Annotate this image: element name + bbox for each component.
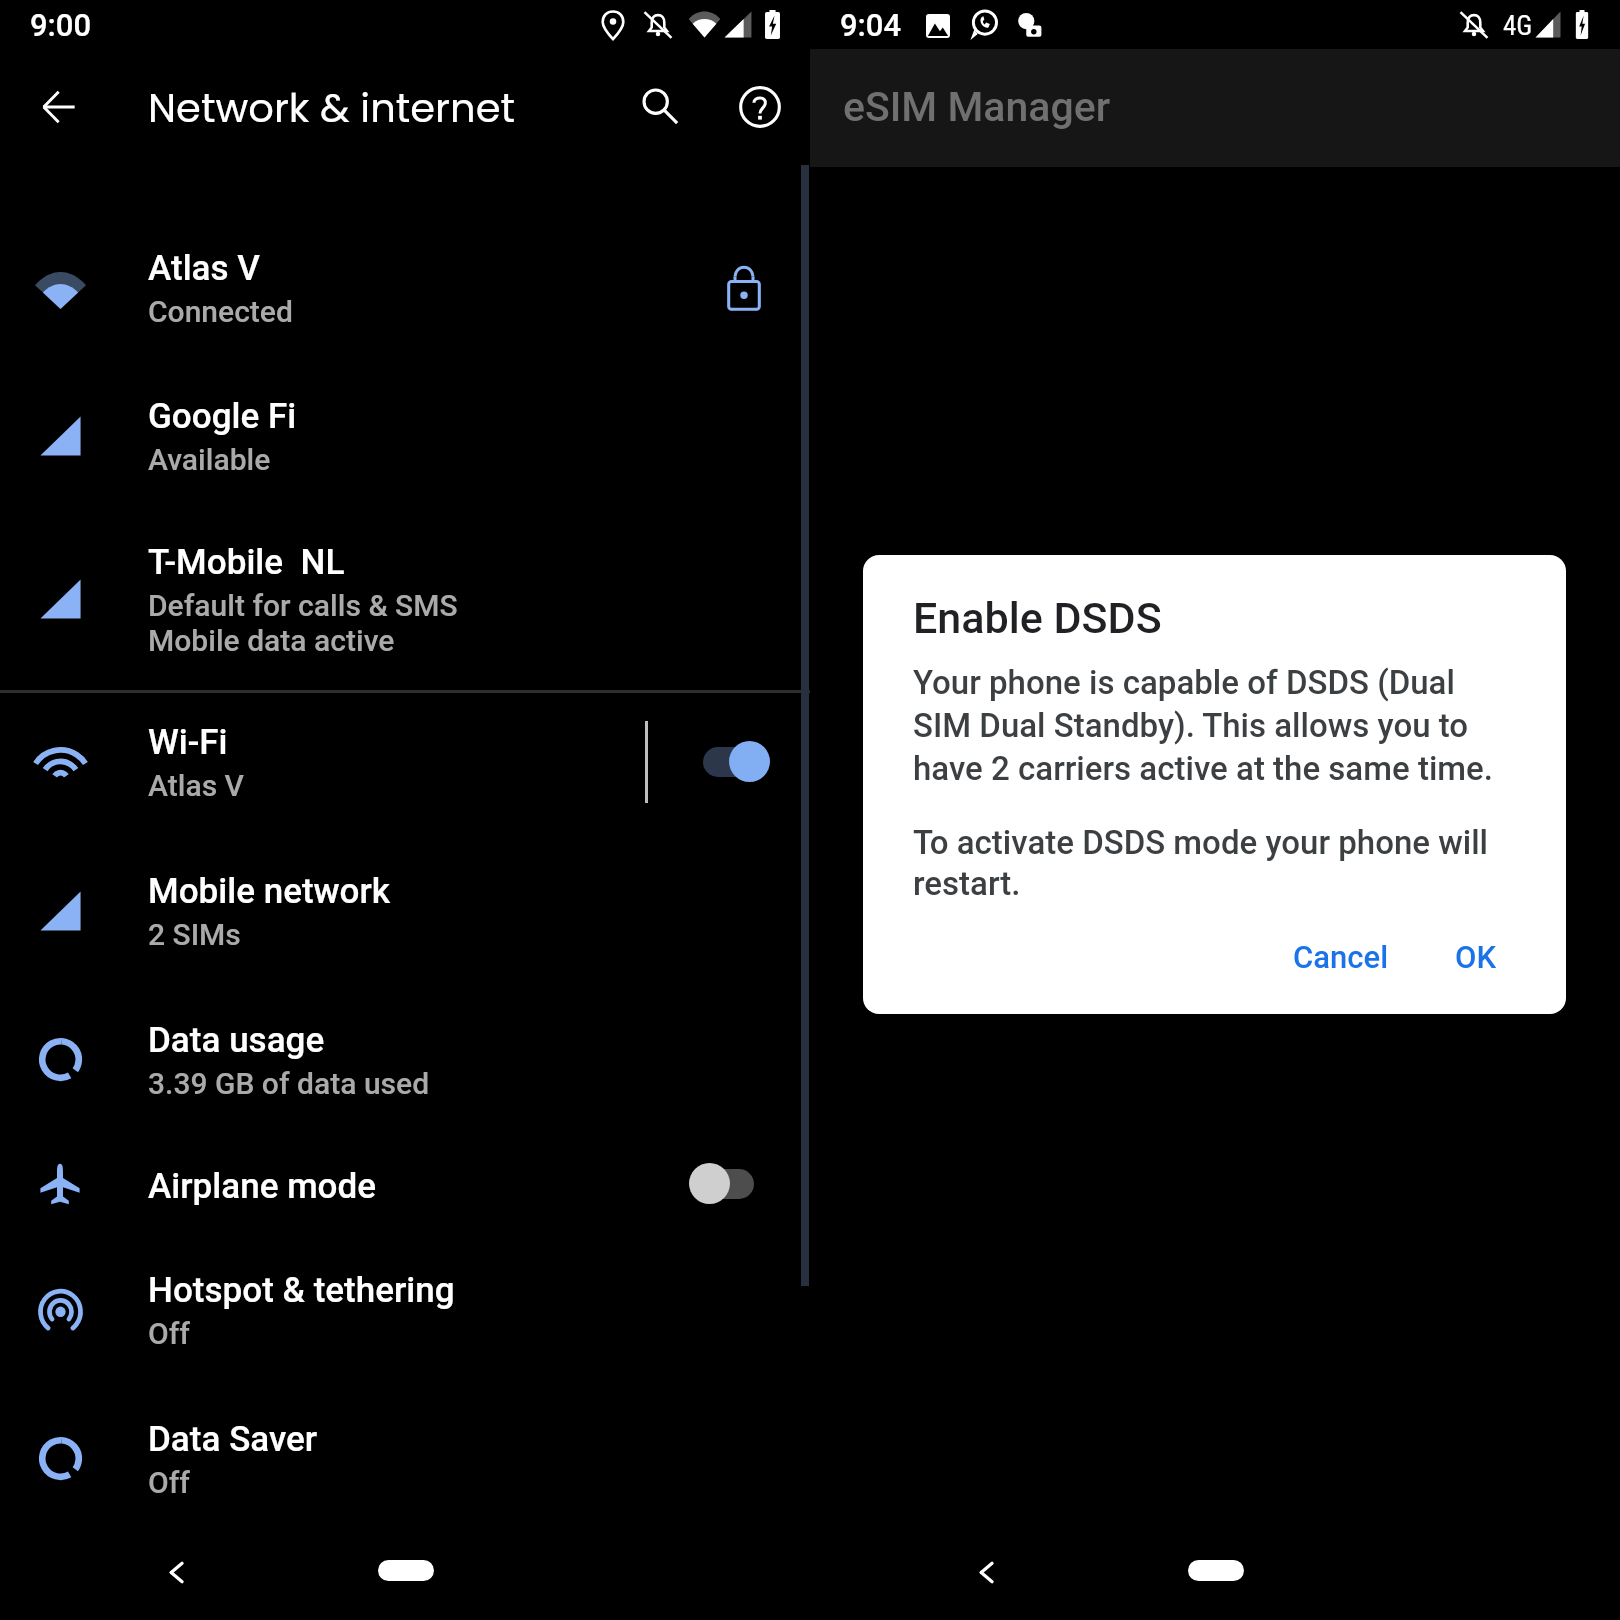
button[interactable]: Search [624,70,696,142]
staticText: T-Mobile NL [148,542,345,583]
button[interactable]: Help [724,71,796,143]
staticText: Wi-Fi [148,722,228,763]
staticText: Network & internet [148,80,515,136]
button[interactable]: Home [378,1560,434,1581]
button[interactable]: Switch on [689,736,775,788]
button[interactable]: Cancel [1271,925,1411,989]
button[interactable]: Back [22,71,94,143]
staticText: To activate DSDS mode your phone will re… [913,823,1495,903]
button[interactable]: OK [1433,925,1518,989]
staticText: Mobile network [148,871,391,912]
button[interactable]: Back [962,1548,1010,1596]
staticText: Atlas V [148,248,261,289]
staticText: eSIM Manager [843,83,1111,131]
staticText: Available [148,442,271,477]
staticText: OK [1455,939,1496,975]
staticText: Default for calls & SMS Mobile data acti… [148,588,458,658]
button[interactable]: Data usage [0,985,810,1134]
staticText: Cancel [1293,939,1389,975]
staticText: Google Fi [148,396,297,437]
button[interactable]: Back [152,1548,200,1596]
button[interactable]: Airplane mode [0,1134,810,1234]
staticText: Airplane mode [148,1166,377,1207]
staticText: 9:00 [30,7,92,43]
staticText: 2 SIMs [148,917,241,952]
button[interactable]: Wi-Fi [0,688,810,836]
staticText: Off [148,1465,190,1500]
button[interactable]: Google Fi [0,362,810,510]
staticText: Connected [148,294,293,329]
button[interactable]: Hotspot & tethering [0,1234,810,1386]
staticText: Enable DSDS [913,593,1162,643]
staticText: 3.39 GB of data used [148,1066,430,1101]
button[interactable]: Home [1188,1560,1244,1581]
button[interactable]: T-Mobile NL [0,510,810,688]
button[interactable]: Data Saver [0,1386,810,1531]
staticText: Your phone is capable of DSDS (Dual SIM … [913,663,1495,788]
button[interactable]: Switch off [689,1158,775,1210]
staticText: Off [148,1316,190,1351]
staticText: Hotspot & tethering [148,1270,455,1311]
staticText: 9:04 [840,7,902,43]
staticText: Data Saver [148,1419,318,1460]
staticText: 4G [1503,10,1533,42]
staticText: Data usage [148,1020,325,1061]
button[interactable]: Atlas V [0,214,810,362]
button[interactable]: Mobile network [0,836,810,985]
staticText: Atlas V [148,768,245,803]
